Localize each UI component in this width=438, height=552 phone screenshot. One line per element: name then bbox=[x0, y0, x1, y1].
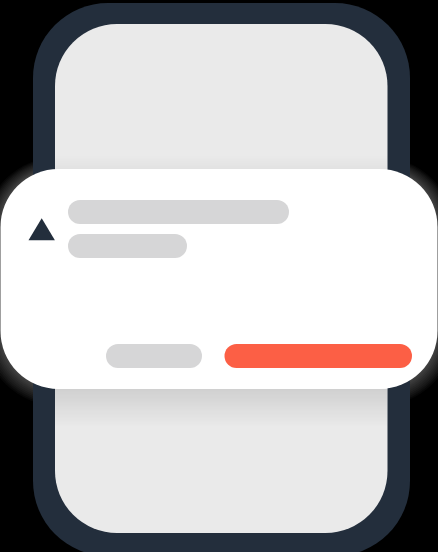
button[interactable]: Cancel bbox=[106, 344, 202, 368]
button[interactable]: Confirm bbox=[225, 344, 413, 368]
